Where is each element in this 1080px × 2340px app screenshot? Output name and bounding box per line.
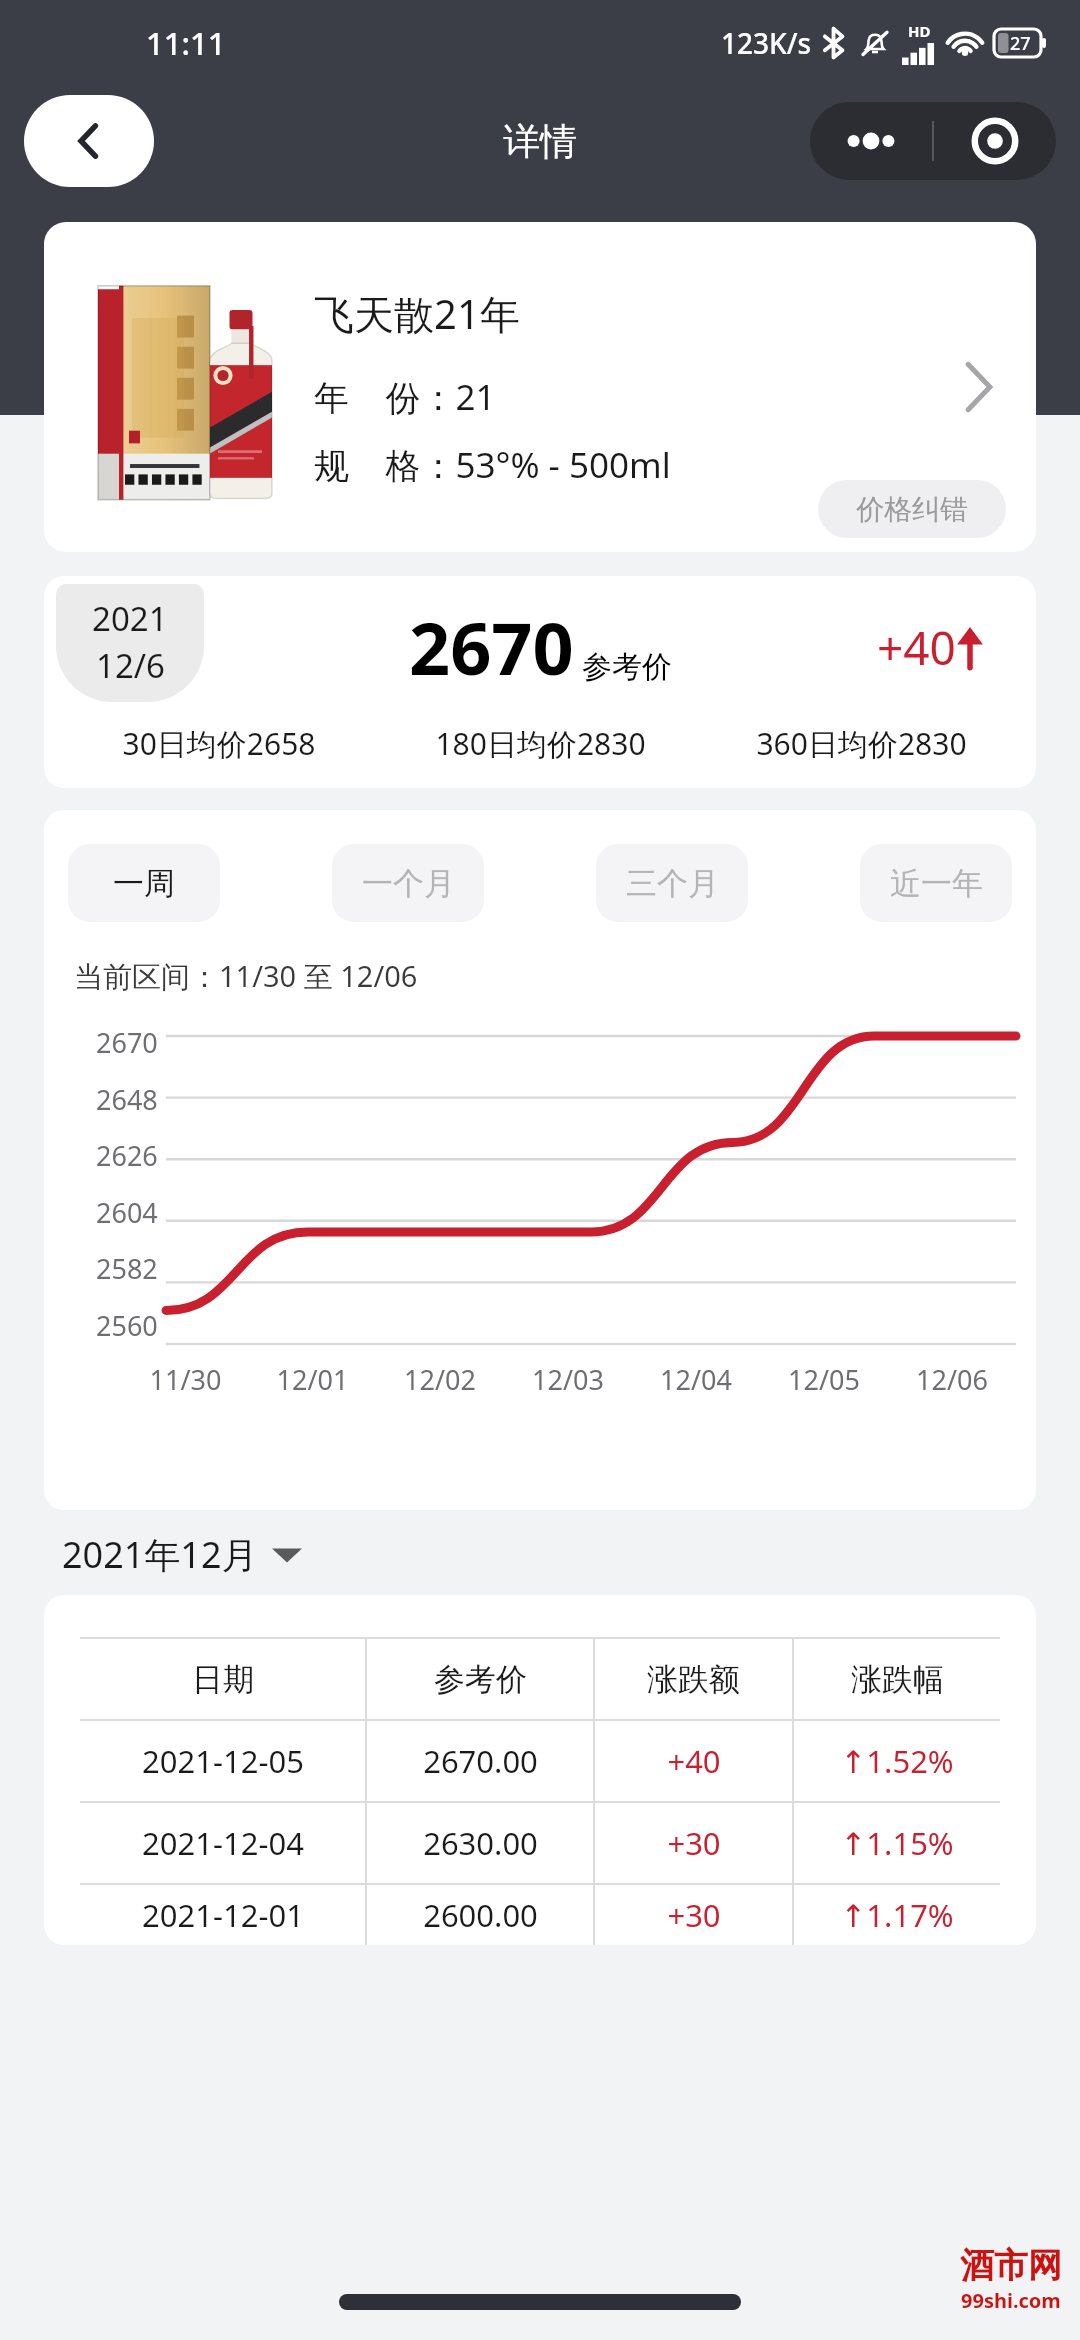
staticText: 12/01: [249, 1361, 376, 1398]
button[interactable]: 三个月: [596, 844, 748, 922]
staticText: 2648: [96, 1081, 158, 1118]
staticText: HD: [908, 21, 931, 41]
staticText: 123K/s: [721, 24, 812, 62]
button[interactable]: Close: [934, 102, 1056, 180]
staticText: 详情: [503, 118, 577, 165]
staticText: 12/02: [376, 1361, 504, 1398]
staticText: 一个月: [362, 864, 455, 903]
staticText: 近一年: [890, 864, 983, 903]
button[interactable]: 2021年12月: [62, 1530, 302, 1579]
staticText: 2630.00: [423, 1822, 538, 1864]
button[interactable]: 一个月: [332, 844, 484, 922]
staticText: 三个月: [626, 864, 719, 903]
staticText: +30: [667, 1894, 721, 1936]
staticText: 180日均价2830: [380, 723, 701, 764]
staticText: 飞天散21年: [314, 286, 520, 341]
button[interactable]: More: [810, 102, 932, 180]
staticText: 价格纠错: [856, 492, 968, 527]
staticText: 年 份：21: [314, 373, 496, 421]
staticText: 12/03: [504, 1361, 632, 1398]
staticText: 酒市网: [960, 2244, 1062, 2287]
staticText: 参考价: [434, 1660, 527, 1699]
staticText: 参考价: [582, 648, 672, 686]
staticText: 2600.00: [423, 1894, 538, 1936]
staticText: 12/06: [888, 1361, 1016, 1398]
staticText: 12/04: [632, 1361, 760, 1398]
staticText: 2021-12-01: [142, 1894, 304, 1936]
button[interactable]: 飞天散21年: [44, 222, 1036, 552]
staticText: 2582: [96, 1250, 158, 1287]
button[interactable]: Back: [24, 95, 154, 187]
staticText: +30: [667, 1822, 721, 1864]
staticText: 日期: [192, 1660, 254, 1699]
staticText: 2021-12-05: [142, 1740, 304, 1782]
staticText: +40: [877, 616, 956, 679]
staticText: 涨跌幅: [851, 1660, 944, 1699]
staticText: 一周: [113, 864, 175, 903]
staticText: 2021年12月: [62, 1530, 258, 1579]
staticText: 30日均价2658: [58, 723, 380, 764]
button[interactable]: 价格纠错: [818, 480, 1006, 538]
staticText: 27: [1010, 31, 1031, 56]
staticText: ↑1.17%: [840, 1894, 954, 1936]
staticText: 当前区间：11/30 至 12/06: [74, 956, 418, 996]
staticText: 12/05: [760, 1361, 888, 1398]
staticText: 99shi.com: [961, 2287, 1061, 2314]
staticText: 360日均价2830: [701, 723, 1022, 764]
staticText: 12/6: [96, 643, 165, 688]
staticText: 2021: [92, 596, 168, 641]
button[interactable]: 一周: [68, 844, 220, 922]
staticText: 2021-12-04: [142, 1822, 304, 1864]
staticText: 涨跌额: [647, 1660, 740, 1699]
staticText: 11:11: [146, 22, 226, 64]
button[interactable]: 近一年: [860, 844, 1012, 922]
staticText: 11/30: [122, 1361, 249, 1398]
staticText: 2560: [96, 1307, 158, 1344]
staticText: 规 格：53°% - 500ml: [314, 441, 671, 489]
staticText: 2670.00: [423, 1740, 538, 1782]
staticText: +40: [667, 1740, 721, 1782]
staticText: 2626: [96, 1137, 158, 1174]
staticText: 2670: [96, 1024, 158, 1061]
staticText: 2670: [409, 598, 574, 696]
staticText: ↑1.15%: [840, 1822, 954, 1864]
staticText: 2604: [96, 1194, 158, 1231]
staticText: ↑1.52%: [840, 1740, 954, 1782]
